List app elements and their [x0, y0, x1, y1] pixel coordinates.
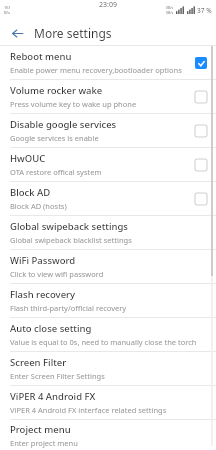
- staticText: Global swipeback blacklist settings: [10, 235, 132, 245]
- staticText: Enable power menu recovery,bootloader op…: [10, 65, 182, 75]
- staticText: Click to view wifi password: [10, 269, 104, 279]
- staticText: 23:09: [99, 0, 117, 10]
- button[interactable]: Auto close setting: [0, 318, 216, 351]
- staticText: WiFi Password: [10, 254, 76, 267]
- staticText: Project menu: [10, 423, 71, 436]
- button[interactable]: Unchecked: [194, 158, 208, 172]
- button[interactable]: Project menu: [0, 420, 216, 450]
- button[interactable]: Reboot menu: [0, 46, 216, 79]
- staticText: 161: [4, 5, 11, 10]
- button[interactable]: Unchecked: [194, 192, 208, 206]
- button[interactable]: Volume rocker wake: [0, 80, 216, 113]
- button[interactable]: Back: [6, 22, 28, 44]
- staticText: ViPER 4 Android FX: [10, 390, 96, 403]
- button[interactable]: Screen Filter: [0, 352, 216, 385]
- staticText: Flash recovery: [10, 288, 76, 301]
- staticText: Block AD: [10, 186, 51, 199]
- staticText: Volume rocker wake: [10, 84, 103, 97]
- staticText: Auto close setting: [10, 322, 92, 335]
- button[interactable]: Disable google services: [0, 114, 216, 147]
- staticText: 37 %: [197, 6, 212, 15]
- staticText: Value is equal to 0s, need to manually c…: [10, 337, 197, 347]
- button[interactable]: Global swipeback settings: [0, 216, 216, 249]
- staticText: Enter project menu: [10, 438, 78, 448]
- button[interactable]: WiFi Password: [0, 250, 216, 283]
- staticText: More settings: [34, 25, 112, 41]
- staticText: Google services is enable: [10, 133, 99, 143]
- button[interactable]: Checked: [194, 56, 208, 70]
- staticText: 0B/s: [166, 5, 174, 10]
- staticText: OTA restore offical system: [10, 167, 102, 177]
- staticText: ViPER 4 Android FX interface related set…: [10, 405, 167, 415]
- button[interactable]: Flash recovery: [0, 284, 216, 317]
- button[interactable]: HwOUC: [0, 148, 216, 181]
- staticText: Press volume key to wake up phone: [10, 99, 137, 109]
- staticText: Global swipeback settings: [10, 220, 128, 233]
- button[interactable]: Block AD: [0, 182, 216, 215]
- staticText: 0B/s: [166, 10, 174, 15]
- button[interactable]: Unchecked: [194, 90, 208, 104]
- staticText: Enter Screen Filter Settings: [10, 371, 105, 381]
- staticText: Block AD (hosts): [10, 201, 67, 211]
- button[interactable]: ViPER 4 Android FX: [0, 386, 216, 419]
- staticText: B/s: [4, 10, 11, 15]
- staticText: HwOUC: [10, 152, 46, 165]
- staticText: Reboot menu: [10, 50, 72, 63]
- staticText: Disable google services: [10, 118, 117, 131]
- staticText: Screen Filter: [10, 356, 67, 369]
- staticText: Flash third-party/official recovery: [10, 303, 127, 313]
- button[interactable]: Unchecked: [194, 124, 208, 138]
